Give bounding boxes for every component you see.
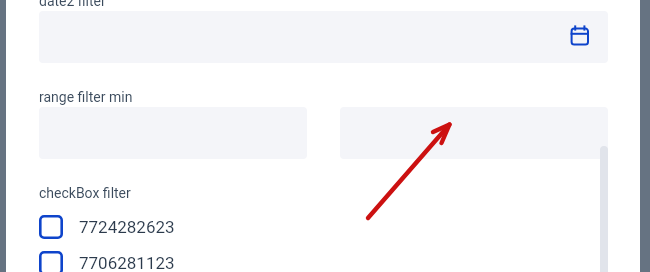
button[interactable]: 7724282623: [34, 209, 324, 243]
staticText: date2 filter: [39, 0, 106, 9]
button[interactable]: Open date picker: [39, 11, 608, 63]
button[interactable]: [340, 107, 608, 159]
staticText: checkBox filter: [39, 185, 131, 201]
button[interactable]: 7706281123: [34, 245, 324, 272]
staticText: range filter min: [39, 89, 133, 105]
staticText: 7724282623: [79, 217, 175, 237]
staticText: 7706281123: [79, 253, 175, 272]
